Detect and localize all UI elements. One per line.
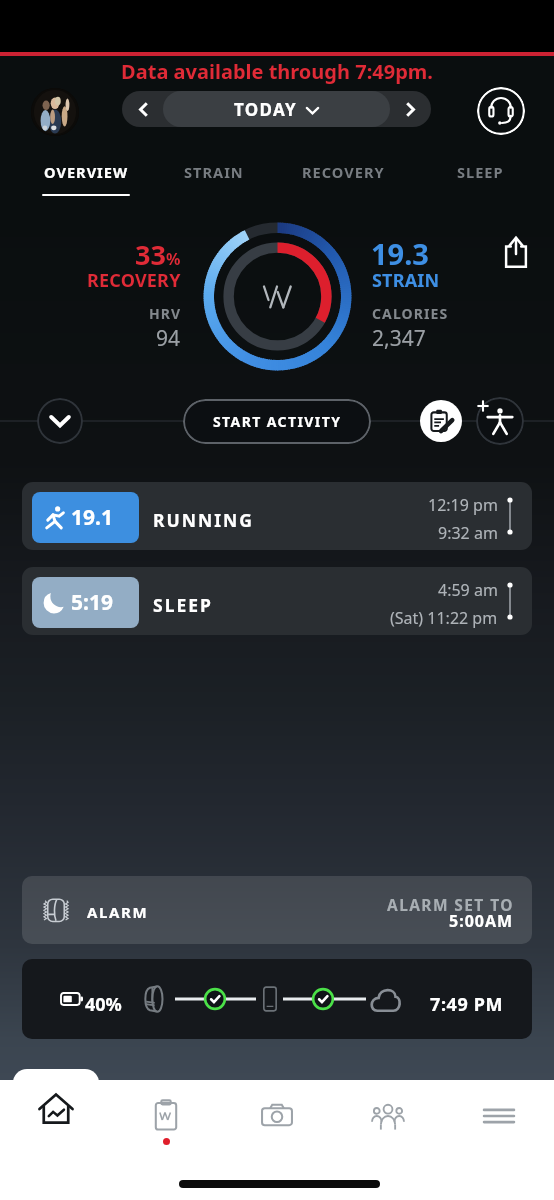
- staticText: RUNNING: [153, 508, 254, 532]
- staticText: 9:32 am: [438, 522, 498, 544]
- button[interactable]: Expand: [37, 398, 83, 444]
- staticText: 19.3: [371, 234, 429, 273]
- button[interactable]: 19.1: [22, 482, 532, 550]
- staticText: 33: [135, 236, 166, 273]
- staticText: OVERVIEW: [44, 162, 129, 182]
- staticText: 4:59 am: [438, 579, 498, 601]
- staticText: 19.1: [71, 503, 113, 532]
- button[interactable]: Share: [497, 233, 535, 271]
- button[interactable]: Menu: [443, 1080, 554, 1160]
- staticText: 40%: [85, 992, 122, 1017]
- button[interactable]: OVERVIEW: [32, 152, 140, 196]
- button[interactable]: Community: [332, 1080, 443, 1160]
- button[interactable]: SLEEP: [436, 152, 524, 196]
- button[interactable]: TODAY: [163, 91, 390, 127]
- button[interactable]: Add activity: [476, 397, 524, 445]
- button[interactable]: Camera: [221, 1080, 332, 1160]
- button[interactable]: Journal: [110, 1080, 221, 1160]
- staticText: ALARM SET TO: [387, 894, 514, 915]
- staticText: %: [166, 248, 181, 270]
- button[interactable]: START ACTIVITY: [183, 399, 371, 444]
- staticText: 7:49 PM: [430, 992, 503, 1017]
- staticText: SLEEP: [153, 593, 213, 617]
- staticText: CALORIES: [372, 304, 449, 323]
- staticText: RECOVERY: [87, 268, 181, 293]
- button[interactable]: 40%: [22, 959, 532, 1039]
- button[interactable]: ALARM: [22, 876, 532, 944]
- button[interactable]: Profile: [31, 88, 79, 136]
- staticText: STRAIN: [184, 162, 244, 182]
- button[interactable]: 5:19: [22, 567, 532, 635]
- staticText: 2,347: [372, 324, 426, 353]
- staticText: STRAIN: [372, 268, 440, 293]
- staticText: RECOVERY: [302, 162, 385, 182]
- staticText: 94: [156, 324, 181, 353]
- button[interactable]: Journal: [420, 400, 462, 442]
- staticText: HRV: [149, 304, 181, 323]
- button[interactable]: Home: [13, 1069, 99, 1200]
- staticText: SLEEP: [457, 162, 504, 182]
- button[interactable]: STRAIN: [168, 152, 260, 196]
- staticText: 5:00AM: [449, 910, 514, 932]
- button[interactable]: Next day: [389, 91, 431, 127]
- button[interactable]: Support: [477, 87, 525, 135]
- staticText: TODAY: [234, 98, 297, 121]
- staticText: Data available through 7:49pm.: [0, 58, 554, 85]
- staticText: 5:19: [71, 588, 113, 617]
- button[interactable]: RECOVERY: [289, 152, 397, 196]
- staticText: 12:19 pm: [428, 494, 498, 516]
- staticText: (Sat) 11:22 pm: [390, 607, 498, 629]
- button[interactable]: Previous day: [122, 91, 164, 127]
- staticText: ALARM: [87, 902, 149, 922]
- staticText: START ACTIVITY: [213, 412, 342, 431]
